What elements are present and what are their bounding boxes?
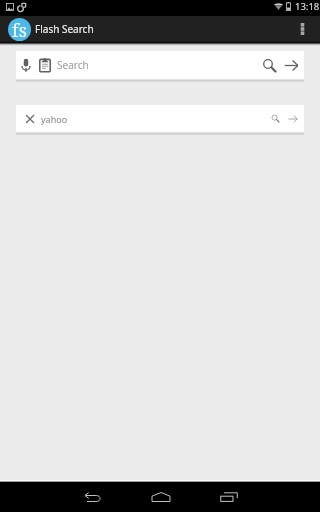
staticText: Flash Search xyxy=(35,22,94,36)
staticText: 13:18 xyxy=(295,0,320,13)
button[interactable]: Recents xyxy=(195,482,262,512)
button[interactable]: Search xyxy=(16,51,304,79)
button[interactable]: Home xyxy=(126,482,195,512)
staticText: yahoo xyxy=(41,113,68,125)
staticText: fs xyxy=(12,18,27,41)
staticText: Search xyxy=(57,58,89,72)
button[interactable]: Back xyxy=(58,482,126,512)
button[interactable]: More options xyxy=(289,16,316,43)
button[interactable]: yahoo xyxy=(16,105,304,132)
